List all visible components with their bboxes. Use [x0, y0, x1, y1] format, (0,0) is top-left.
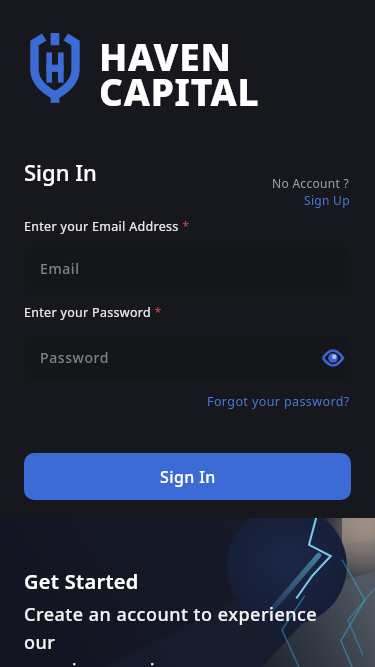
- staticText: Get Started: [24, 568, 139, 595]
- button[interactable]: [323, 348, 343, 368]
- staticText: Enter your Password *: [24, 304, 162, 321]
- staticText: Email: [40, 259, 80, 278]
- staticText: Create an account to experience: [24, 602, 318, 627]
- staticText: No Account ?: [272, 175, 350, 191]
- staticText: Password: [40, 348, 110, 367]
- staticText: Enter your Email Address *: [24, 218, 190, 235]
- button[interactable]: Sign In: [24, 453, 351, 500]
- staticText: premium services: [24, 658, 185, 667]
- button[interactable]: Password: [24, 336, 351, 379]
- staticText: Forgot your password?: [207, 393, 350, 410]
- staticText: Sign Up: [304, 192, 350, 208]
- staticText: HAVEN: [99, 31, 232, 81]
- button[interactable]: Email: [24, 247, 351, 290]
- button[interactable]: Sign Up: [304, 192, 350, 208]
- button[interactable]: Forgot your password?: [207, 393, 350, 410]
- staticText: our: [24, 630, 56, 655]
- staticText: Sign In: [24, 157, 97, 187]
- staticText: CAPITAL: [99, 66, 260, 116]
- staticText: Sign In: [160, 466, 216, 488]
